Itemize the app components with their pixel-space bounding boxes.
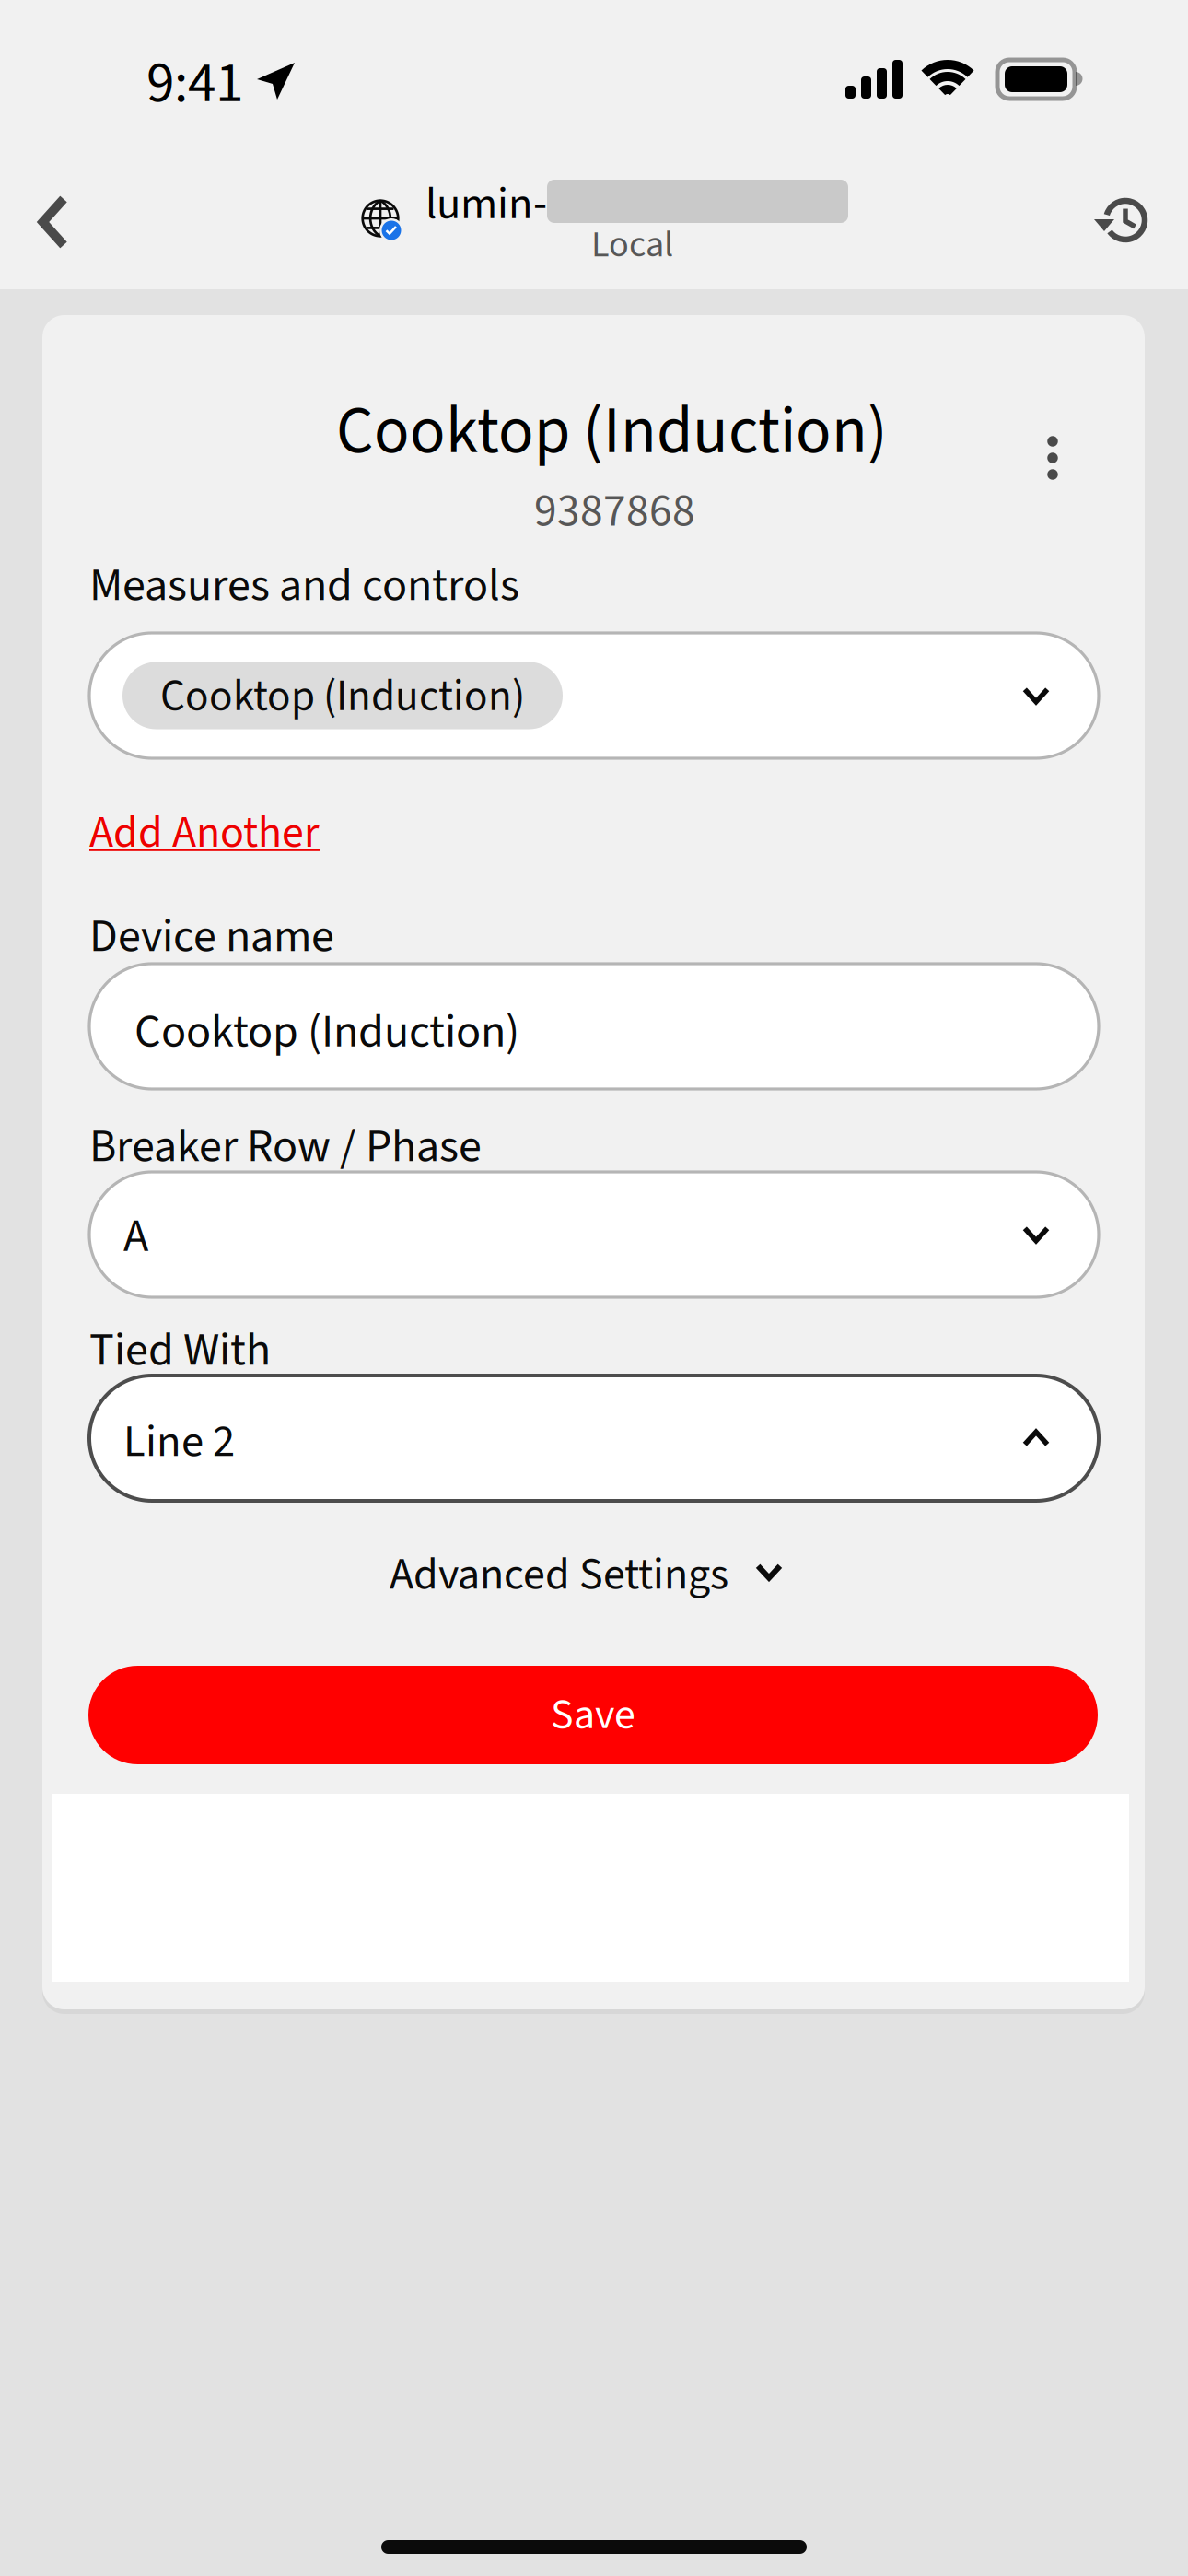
button[interactable]: Add Another [89, 802, 320, 864]
button[interactable]: More options [1010, 416, 1095, 500]
staticText: Breaker Row / Phase [89, 1114, 482, 1179]
button[interactable]: Back [7, 170, 99, 274]
button[interactable]: Line 2 [89, 1376, 1099, 1501]
button[interactable]: Cooktop (Induction) [89, 633, 1099, 758]
staticText: lumin- [425, 172, 547, 236]
staticText: Tied With [89, 1317, 271, 1383]
staticText: Save [551, 1685, 635, 1745]
staticText: Cooktop (Induction) [336, 385, 888, 478]
staticText: Line 2 [123, 1410, 235, 1474]
staticText: Local [591, 218, 673, 271]
staticText: Measures and controls [89, 553, 519, 618]
staticText: Advanced Settings [390, 1543, 728, 1606]
staticText: A [123, 1204, 148, 1269]
staticText: 9387868 [534, 479, 695, 544]
button[interactable]: History [1075, 169, 1167, 272]
button[interactable]: Advanced Settings [390, 1543, 783, 1606]
staticText: Add Another [89, 802, 320, 864]
staticText: Cooktop (Induction) [134, 999, 519, 1065]
staticText: 9:41 [146, 43, 243, 124]
button[interactable]: Save [88, 1666, 1098, 1764]
staticText: Cooktop (Induction) [160, 666, 525, 727]
staticText: Device name [89, 904, 334, 969]
button[interactable]: A [89, 1172, 1099, 1297]
